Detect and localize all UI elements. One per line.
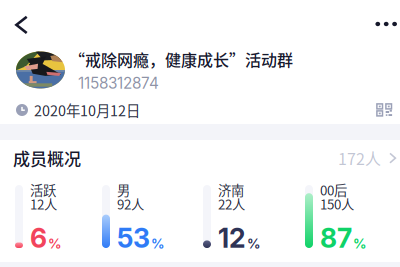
staticText: 53 — [117, 222, 150, 254]
staticText: “戒除网瘾，健康成长”活动群 — [69, 48, 293, 71]
staticText: 济南 — [218, 180, 244, 199]
staticText: 12人 — [30, 194, 57, 213]
staticText: 22人 — [218, 194, 245, 213]
button[interactable]: “戒除网瘾，健康成长”活动群 — [0, 44, 400, 96]
staticText: % — [247, 236, 261, 252]
staticText: 172人 — [338, 146, 381, 170]
staticText: 活跃 — [30, 180, 56, 199]
button[interactable]: 成员概况 — [0, 140, 400, 176]
button[interactable]: More options — [353, 0, 400, 44]
staticText: 92人 — [117, 194, 144, 213]
staticText: 成员概况 — [13, 146, 81, 170]
staticText: 1158312874 — [78, 74, 159, 92]
staticText: % — [151, 236, 165, 252]
button[interactable]: Back — [0, 0, 59, 44]
staticText: 150人 — [320, 194, 354, 213]
staticText: 12 — [218, 222, 246, 254]
button[interactable]: Group QR code — [369, 96, 400, 124]
staticText: 87 — [320, 222, 352, 254]
staticText: 男 — [117, 180, 130, 199]
staticText: 00后 — [320, 180, 347, 199]
staticText: 2020年10月12日 — [34, 100, 140, 120]
staticText: % — [353, 236, 367, 252]
staticText: 6 — [30, 222, 47, 254]
staticText: % — [48, 236, 62, 252]
